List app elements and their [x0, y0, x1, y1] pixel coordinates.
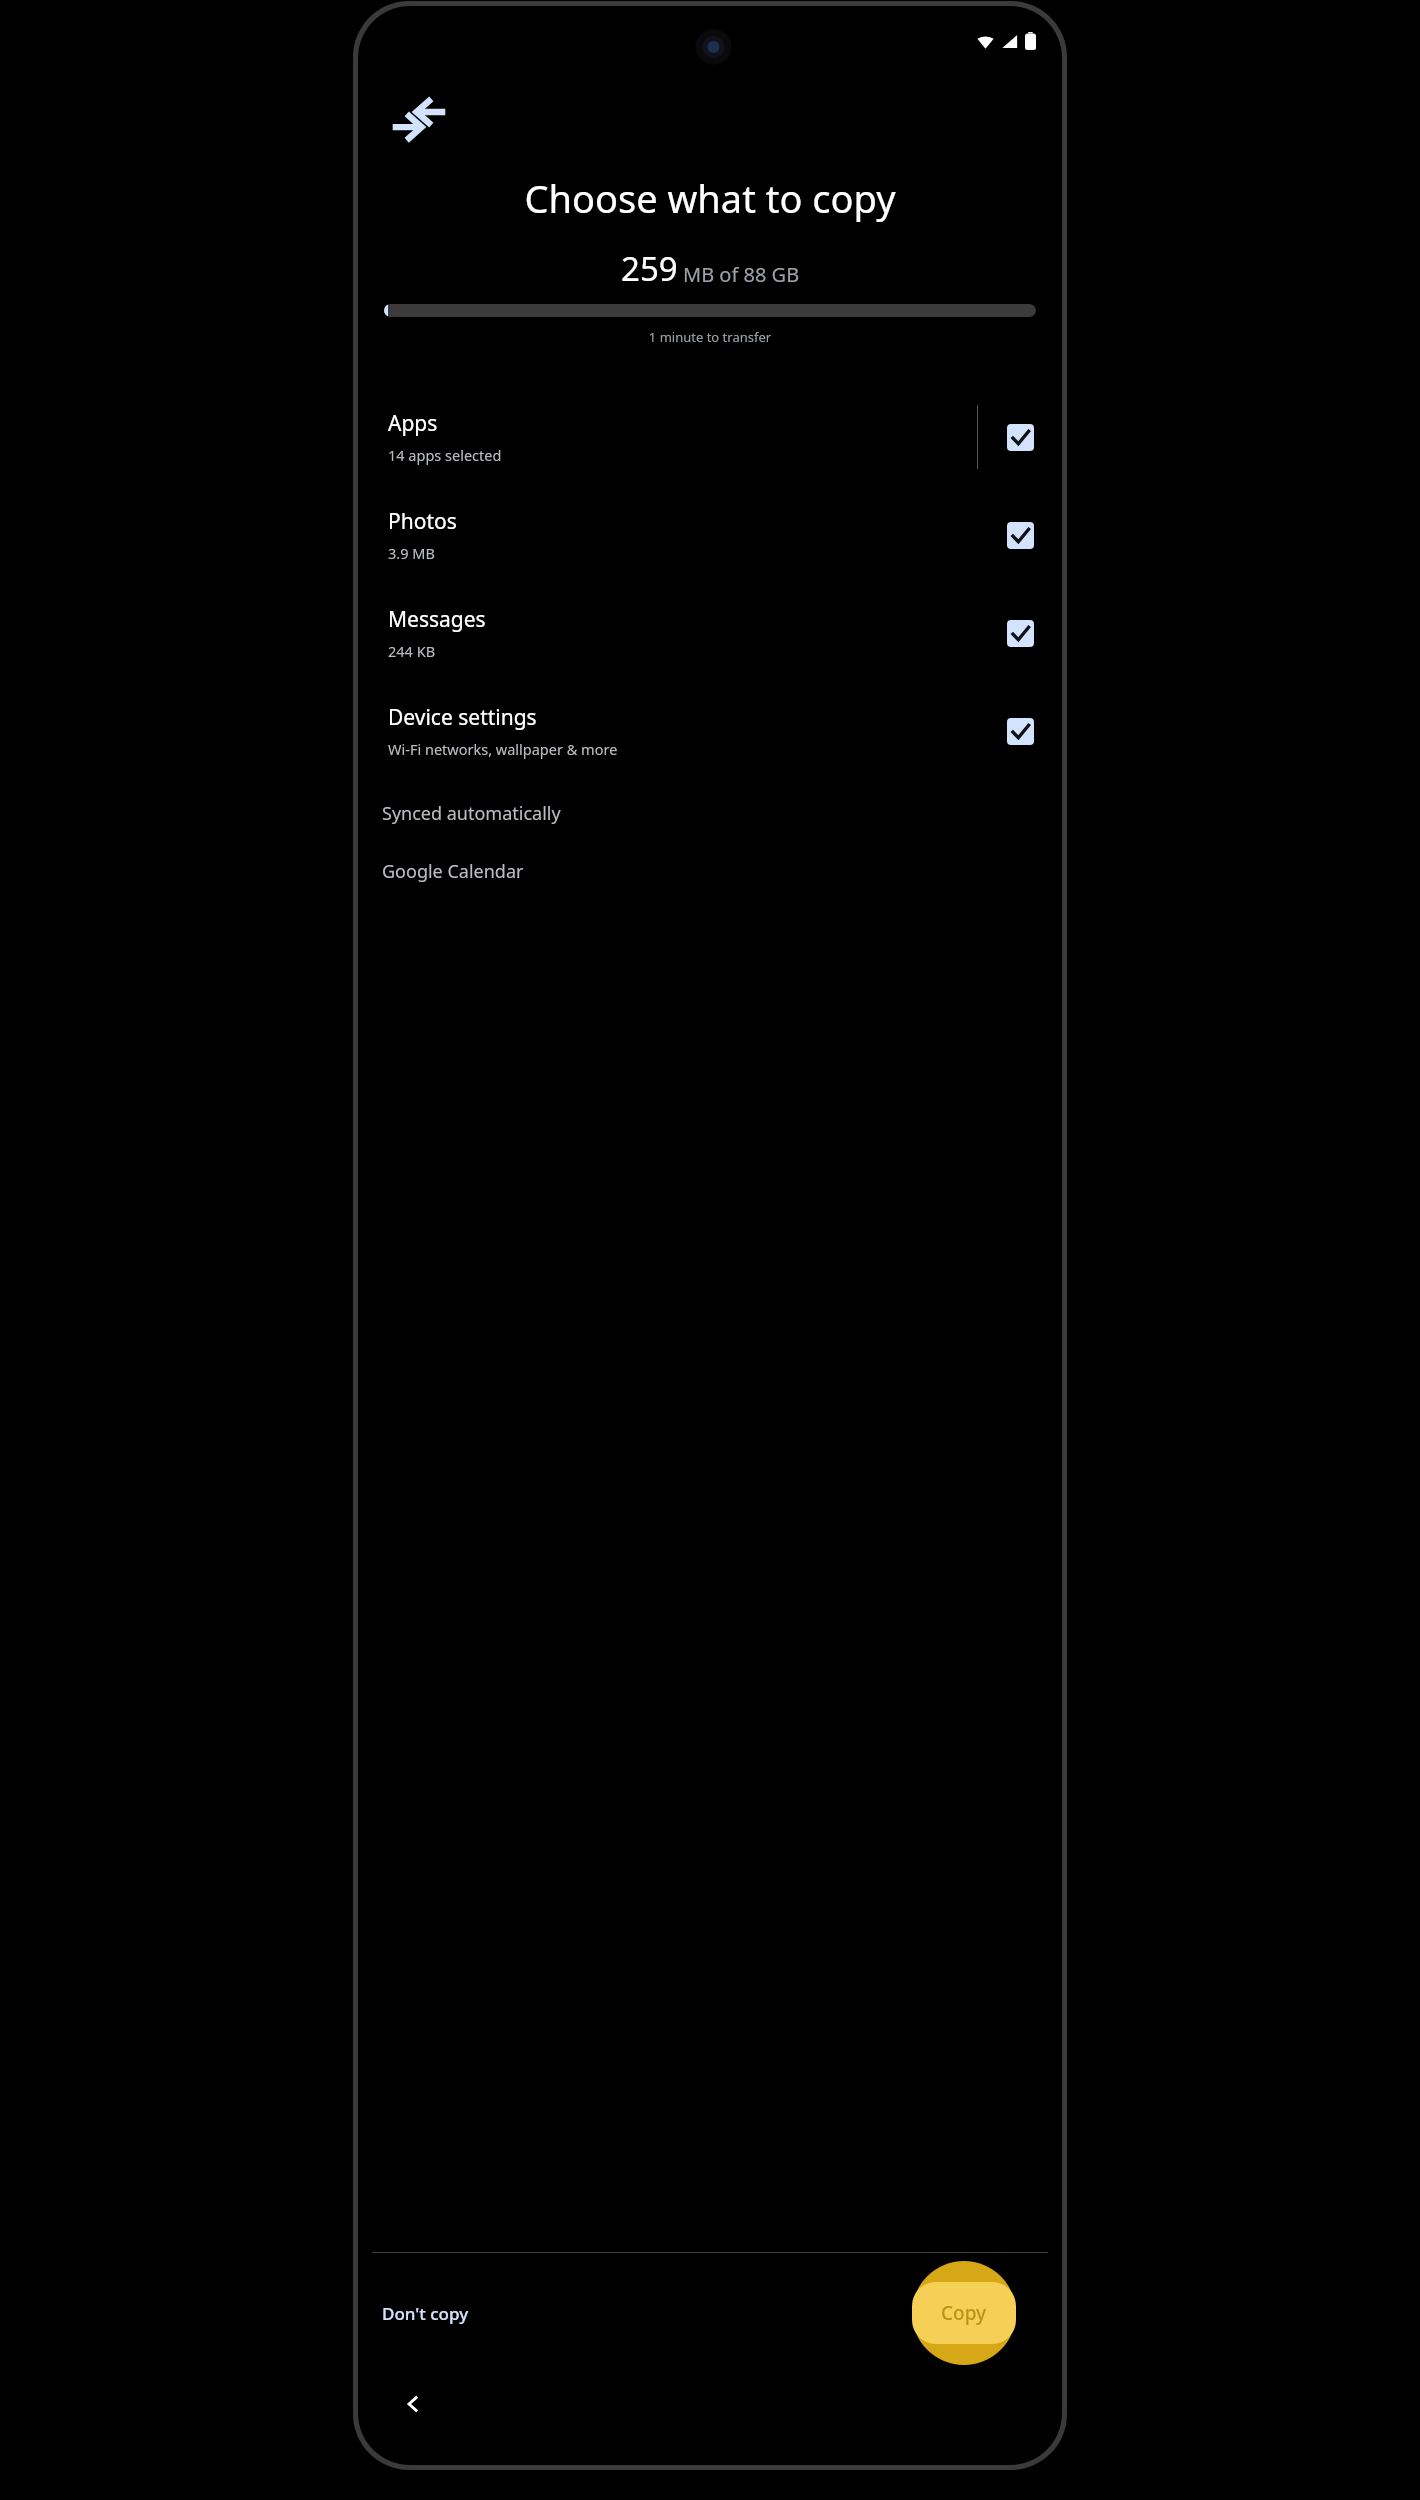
staticText: Messages — [388, 605, 486, 634]
button[interactable]: Messages — [358, 584, 1062, 682]
staticText: Choose what to copy — [378, 172, 1042, 224]
button[interactable]: Back — [394, 2385, 432, 2423]
staticText: Device settings — [388, 703, 537, 732]
staticText: 1 minute to transfer — [358, 328, 1062, 346]
button[interactable]: Synced automatically — [358, 790, 1062, 836]
button[interactable]: Checkbox selected — [1003, 420, 1037, 454]
button[interactable]: Transfer — [388, 88, 450, 150]
staticText: MB of 88 GB — [683, 261, 800, 288]
staticText: Photos — [388, 507, 457, 536]
button[interactable]: Google Calendar — [358, 848, 1062, 894]
button[interactable]: Checkbox selected — [1003, 518, 1037, 552]
staticText: Wi-Fi networks, wallpaper & more — [388, 739, 618, 759]
button[interactable]: Checkbox selected — [1003, 714, 1037, 748]
staticText: 244 KB — [388, 641, 436, 661]
button[interactable]: Device settings — [358, 682, 1062, 780]
staticText: Don't copy — [382, 2302, 469, 2325]
staticText: 259 — [621, 246, 678, 291]
button[interactable]: Photos — [358, 486, 1062, 584]
button[interactable]: Apps — [358, 388, 1062, 486]
button[interactable]: Checkbox selected — [1003, 616, 1037, 650]
button[interactable]: Don't copy — [368, 2292, 483, 2335]
staticText: 14 apps selected — [388, 445, 502, 465]
staticText: Synced automatically — [382, 801, 561, 826]
staticText: 3.9 MB — [388, 543, 435, 563]
staticText: Apps — [388, 409, 438, 438]
staticText: Copy — [941, 2300, 987, 2326]
button[interactable]: Copy — [912, 2282, 1016, 2344]
staticText: Google Calendar — [382, 859, 524, 884]
